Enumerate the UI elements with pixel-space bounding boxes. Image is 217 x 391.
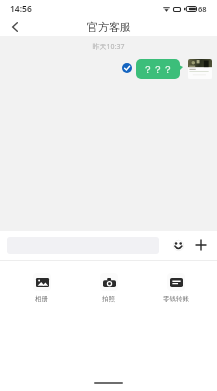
button[interactable]: More <box>193 237 209 253</box>
staticText: 14:56 <box>10 3 32 15</box>
button[interactable]: 零钱转账 <box>142 273 209 303</box>
staticText: 68 <box>198 4 207 14</box>
staticText: 拍照 <box>102 295 115 303</box>
button[interactable]: 相册 <box>8 273 75 303</box>
staticText: 零钱转账 <box>163 295 189 303</box>
staticText: ？？？ <box>143 63 173 76</box>
staticText: 相册 <box>35 295 48 303</box>
staticText: 昨天10:37 <box>0 42 217 52</box>
button[interactable]: 拍照 <box>75 273 142 303</box>
button[interactable]: Emoji <box>170 237 186 253</box>
button[interactable]: Back <box>0 18 30 36</box>
staticText: 官方客服 <box>87 20 131 34</box>
